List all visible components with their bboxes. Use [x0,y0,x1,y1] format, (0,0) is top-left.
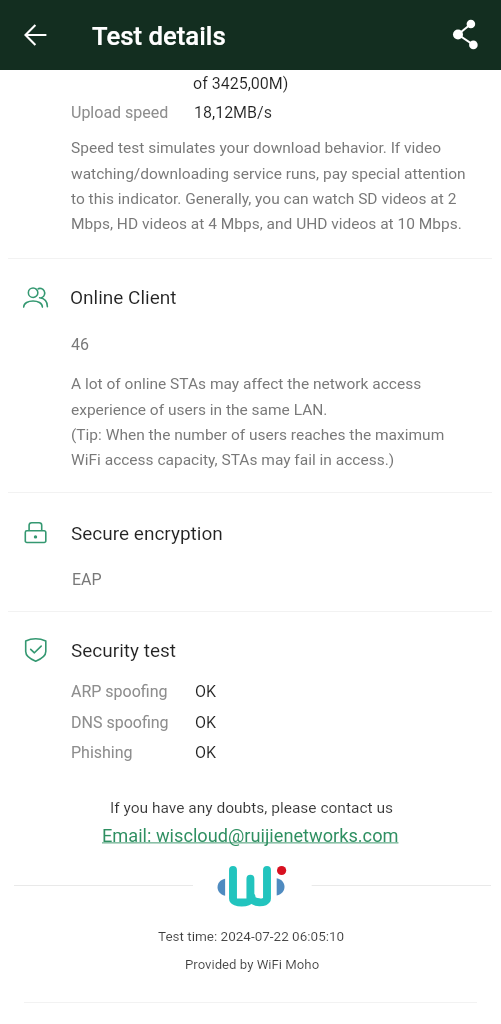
staticText: Email: wiscloud@ruijienetworks.com [102,825,399,846]
staticText: 18,12MB/s [194,103,272,122]
staticText: OK [195,713,217,732]
staticText: Secure encryption [71,522,223,544]
button[interactable] [101,824,399,848]
staticText: Test time: 2024-07-22 06:05:10 [158,928,345,944]
staticText: Online Client [70,286,177,308]
button[interactable]: Share [441,11,489,59]
button[interactable] [0,619,501,671]
staticText: EAP [72,570,102,589]
staticText: Provided by WiFi Moho [185,957,320,972]
staticText: A lot of online STAs may affect the netw… [71,375,469,469]
staticText: of 3425,00M) [193,74,289,93]
staticText: 46 [71,335,89,354]
staticText: DNS spoofing [71,713,169,732]
button[interactable] [0,266,501,318]
button[interactable]: Back [12,11,60,59]
staticText: Test details [92,21,226,51]
staticText: OK [195,682,217,701]
staticText: ARP spoofing [71,682,168,701]
staticText: OK [195,743,217,762]
staticText: Phishing [71,743,133,762]
staticText: Speed test simulates your download behav… [71,139,469,232]
staticText: Security test [71,639,177,661]
staticText: Upload speed [71,103,169,122]
staticText: If you have any doubts, please contact u… [110,799,393,817]
button[interactable] [0,502,501,554]
